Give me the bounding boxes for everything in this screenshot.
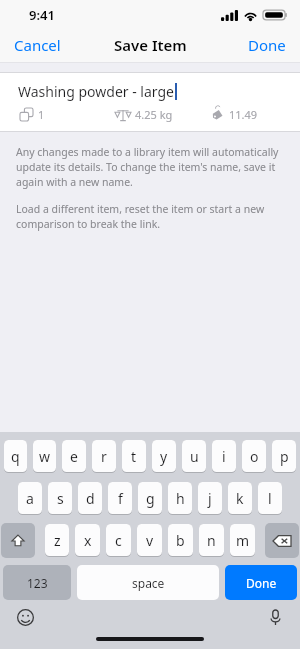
staticText: h [176, 489, 185, 508]
staticText: 11.49 [229, 107, 258, 122]
staticText: t [131, 447, 137, 466]
button[interactable]: r [92, 440, 116, 472]
staticText: u [190, 447, 199, 466]
staticText: f [118, 489, 123, 508]
staticText: s [57, 489, 64, 508]
button[interactable]: b [168, 524, 193, 556]
staticText: d [86, 489, 95, 508]
button[interactable]: space [77, 565, 219, 600]
button[interactable]: m [230, 524, 255, 556]
button[interactable]: t [122, 440, 146, 472]
staticText: 1 [38, 107, 45, 122]
staticText: y [160, 447, 168, 466]
staticText: Done [248, 35, 286, 55]
button[interactable]: Cancel [0, 29, 75, 61]
staticText: e [70, 447, 78, 466]
button[interactable]: e [62, 440, 86, 472]
staticText: q [11, 447, 20, 466]
button[interactable]: i [212, 440, 236, 472]
staticText: i [222, 447, 226, 466]
staticText: Any changes made to a library item will … [16, 145, 284, 189]
staticText: w [39, 447, 51, 466]
staticText: 9:41 [29, 6, 55, 24]
button[interactable]: Backspace [265, 523, 299, 558]
other: Price [210, 108, 224, 122]
button[interactable]: o [242, 440, 266, 472]
other: Copies [20, 108, 33, 121]
staticText: g [146, 489, 155, 508]
staticText: v [146, 531, 154, 550]
button[interactable]: q [4, 440, 27, 472]
button[interactable]: u [182, 440, 206, 472]
button[interactable]: 123 [3, 565, 71, 600]
button[interactable]: n [199, 524, 224, 556]
button[interactable]: d [78, 482, 102, 514]
staticText: z [54, 531, 61, 550]
staticText: m [236, 531, 250, 550]
button[interactable]: c [106, 524, 131, 556]
button[interactable]: f [108, 482, 132, 514]
button[interactable]: x [75, 524, 100, 556]
staticText: Load a different item, reset the item or… [16, 202, 284, 231]
staticText: Save Item [114, 35, 187, 55]
staticText: a [26, 489, 34, 508]
button[interactable]: Shift [1, 523, 35, 558]
button[interactable]: p [272, 440, 296, 472]
button[interactable]: Dictate [263, 605, 287, 629]
staticText: l [268, 489, 272, 508]
button[interactable]: Done [225, 565, 297, 600]
button[interactable]: v [137, 524, 162, 556]
staticText: 123 [27, 575, 48, 591]
button[interactable]: g [138, 482, 162, 514]
button[interactable]: z [45, 524, 69, 556]
staticText: c [115, 531, 122, 550]
staticText: Done [246, 575, 277, 591]
button[interactable]: Weight [116, 107, 210, 122]
staticText: x [84, 531, 92, 550]
button[interactable]: Emoji [13, 605, 37, 629]
staticText: r [101, 447, 107, 466]
button[interactable]: s [48, 482, 72, 514]
staticText: Cancel [14, 35, 61, 55]
staticText: 4.25 kg [135, 107, 173, 122]
button[interactable]: l [258, 482, 282, 514]
button[interactable]: Done [234, 29, 300, 61]
button[interactable]: h [168, 482, 192, 514]
button[interactable]: y [152, 440, 176, 472]
staticText: j [208, 489, 212, 508]
button[interactable]: j [198, 482, 222, 514]
staticText: b [176, 531, 185, 550]
staticText: Washing powder - large [18, 82, 174, 101]
button[interactable]: a [18, 482, 42, 514]
button[interactable]: Price [210, 107, 282, 122]
staticText: o [250, 447, 259, 466]
button[interactable]: Copies [20, 107, 116, 122]
button[interactable]: w [33, 440, 56, 472]
staticText: k [236, 489, 244, 508]
staticText: p [280, 447, 289, 466]
other: Weight [116, 108, 130, 122]
button[interactable]: k [228, 482, 252, 514]
button[interactable]: Washing powder - large [0, 82, 300, 101]
staticText: space [132, 575, 165, 591]
staticText: n [207, 531, 216, 550]
